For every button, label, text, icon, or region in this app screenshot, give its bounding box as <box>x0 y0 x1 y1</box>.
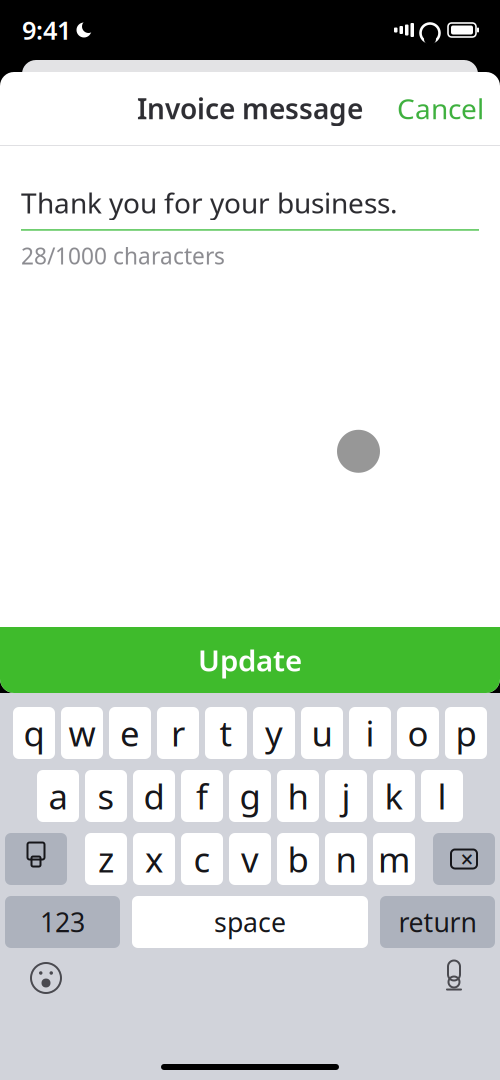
staticText: s <box>97 773 114 819</box>
button[interactable]: Cancel <box>381 80 500 137</box>
staticText: u <box>311 710 332 756</box>
staticText: × <box>460 844 473 874</box>
staticText: w <box>68 710 95 756</box>
button[interactable]: x <box>133 833 175 885</box>
button[interactable]: y <box>253 707 295 759</box>
button[interactable]: g <box>229 770 271 822</box>
staticText: f <box>196 773 208 819</box>
staticText: k <box>384 773 403 819</box>
button[interactable]: Dictation <box>432 956 476 1000</box>
staticText: j <box>341 773 350 819</box>
button[interactable]: s <box>85 770 127 822</box>
staticText: 9:41 <box>22 13 71 47</box>
button[interactable]: c <box>181 833 223 885</box>
staticText: 28/1000 characters <box>21 241 225 271</box>
staticText: r <box>171 710 185 756</box>
button[interactable]: k <box>373 770 415 822</box>
staticText: x <box>145 836 163 882</box>
button[interactable]: r <box>157 707 199 759</box>
staticText: n <box>335 836 356 882</box>
staticText: return <box>398 904 476 940</box>
button[interactable]: m <box>373 833 415 885</box>
button[interactable]: j <box>325 770 367 822</box>
button[interactable]: Shift <box>5 833 67 885</box>
staticText: space <box>214 904 286 940</box>
staticText: l <box>437 773 446 819</box>
button[interactable]: Delete <box>433 833 495 885</box>
button[interactable]: t <box>205 707 247 759</box>
staticText: y <box>265 710 283 756</box>
button[interactable]: l <box>421 770 463 822</box>
staticText: o <box>407 710 428 756</box>
button[interactable]: q <box>13 707 55 759</box>
staticText: h <box>287 773 308 819</box>
staticText: t <box>219 710 232 756</box>
staticText: Cancel <box>397 90 484 127</box>
button[interactable]: a <box>37 770 79 822</box>
button[interactable]: o <box>397 707 439 759</box>
button[interactable]: v <box>229 833 271 885</box>
staticText: p <box>455 710 476 756</box>
staticText: Thank you for your business. <box>21 184 398 221</box>
button[interactable]: Update <box>0 627 500 693</box>
staticText: c <box>193 836 210 882</box>
button[interactable]: 123 <box>5 896 120 948</box>
staticText: m <box>378 836 410 882</box>
button[interactable]: h <box>277 770 319 822</box>
button[interactable]: u <box>301 707 343 759</box>
button[interactable]: n <box>325 833 367 885</box>
button[interactable]: d <box>133 770 175 822</box>
staticText: Update <box>198 640 302 679</box>
staticText: g <box>239 773 260 819</box>
staticText: b <box>287 836 308 882</box>
button[interactable]: space <box>132 896 368 948</box>
button[interactable]: Emoji <box>24 956 68 1000</box>
staticText: Invoice message <box>137 90 363 127</box>
staticText: v <box>241 836 259 882</box>
button[interactable]: i <box>349 707 391 759</box>
staticText: 123 <box>40 904 85 940</box>
button[interactable]: e <box>109 707 151 759</box>
staticText: a <box>48 773 67 819</box>
button[interactable]: return <box>380 896 495 948</box>
staticText: d <box>143 773 164 819</box>
button[interactable]: p <box>445 707 487 759</box>
staticText: e <box>120 710 140 756</box>
button[interactable]: b <box>277 833 319 885</box>
staticText: q <box>23 710 44 756</box>
button[interactable]: Thank you for your business. <box>21 184 479 231</box>
button[interactable]: z <box>85 833 127 885</box>
staticText: z <box>98 836 114 882</box>
staticText: i <box>365 710 374 756</box>
button[interactable]: w <box>61 707 103 759</box>
button[interactable]: f <box>181 770 223 822</box>
